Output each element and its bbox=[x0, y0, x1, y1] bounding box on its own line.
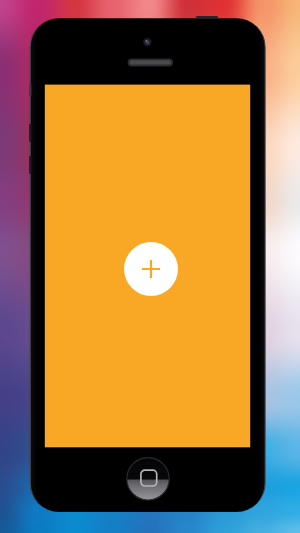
button[interactable]: Add bbox=[124, 242, 178, 296]
